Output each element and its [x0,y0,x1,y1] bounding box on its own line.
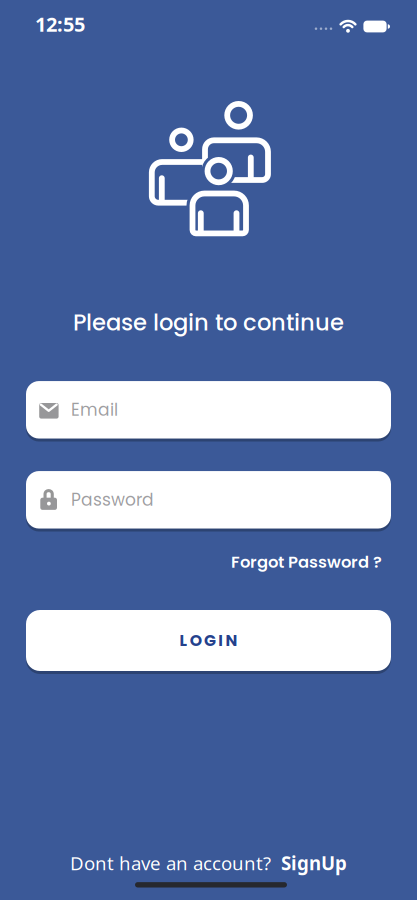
staticText: Password [71,488,154,512]
button[interactable]: Password [26,471,391,529]
staticText: L [180,629,188,651]
staticText: Please login to continue [73,307,344,338]
staticText: N [225,629,237,651]
button[interactable]: L [26,610,391,671]
button[interactable]: Email [26,381,391,439]
button[interactable]: SignUp [281,851,347,875]
staticText: Email [71,398,118,422]
staticText: Forgot Password ? [231,550,382,573]
button[interactable]: Forgot Password ? [231,550,382,573]
staticText: 12:55 [35,11,85,37]
staticText: G [204,629,216,651]
staticText: SignUp [281,851,347,875]
staticText: O [190,629,202,651]
staticText: Dont have an account? [70,851,271,875]
staticText: I [218,629,223,651]
